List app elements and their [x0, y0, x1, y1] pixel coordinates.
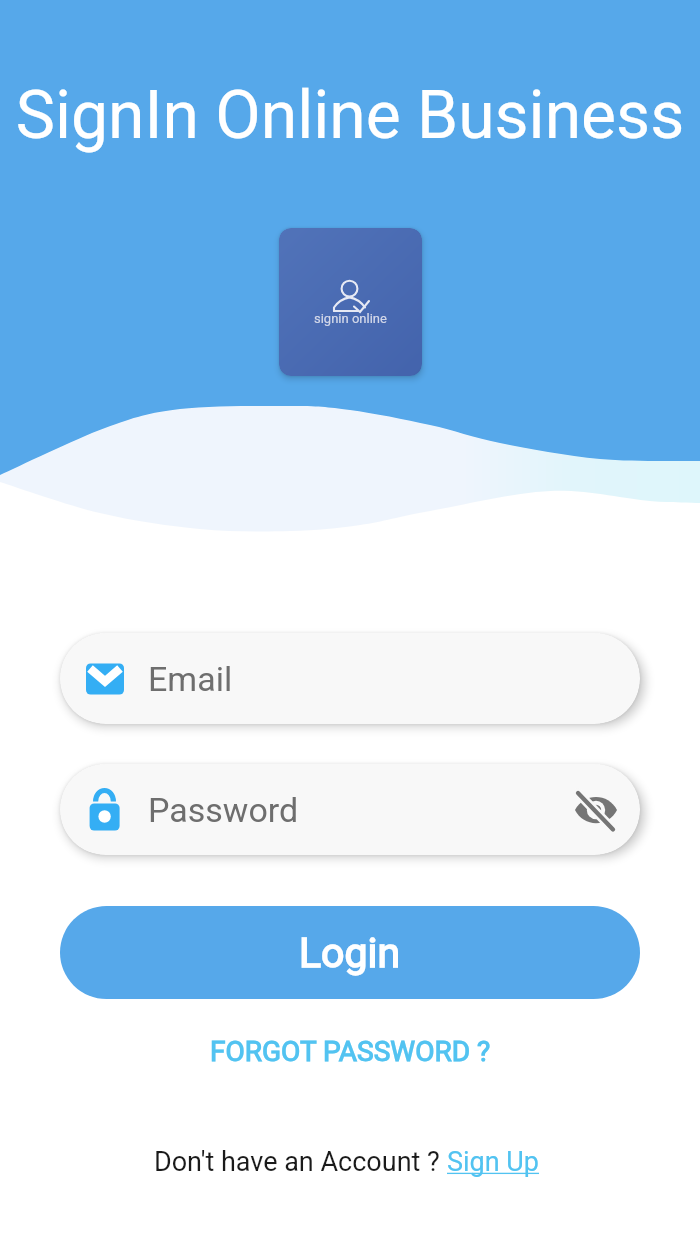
button[interactable]: Show password: [570, 784, 622, 836]
button[interactable]: Sign Up: [447, 1146, 546, 1178]
staticText: Sign Up: [447, 1146, 546, 1178]
button[interactable]: FORGOT PASSWORD ?: [196, 1027, 505, 1076]
staticText: FORGOT PASSWORD ?: [210, 1035, 491, 1068]
staticText: Password: [148, 790, 299, 830]
button[interactable]: Email: [60, 633, 640, 724]
button[interactable]: Login: [60, 906, 640, 999]
staticText: signin online: [314, 311, 387, 326]
button[interactable]: Password: [60, 764, 640, 855]
staticText: SignIn Online Business: [0, 77, 700, 154]
staticText: Email: [148, 659, 233, 699]
staticText: Login: [299, 929, 401, 977]
staticText: Don't have an Account ?: [154, 1146, 447, 1178]
